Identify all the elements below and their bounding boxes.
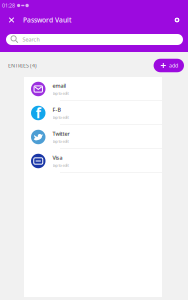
button[interactable]: add	[154, 59, 184, 72]
staticText: Search	[22, 36, 39, 43]
button[interactable]: Twitter	[24, 125, 162, 149]
staticText: f	[36, 104, 41, 122]
staticText: ENTRIES (4)	[8, 62, 37, 69]
staticText: tap to edit	[52, 139, 68, 144]
staticText: Password Vault	[23, 16, 72, 24]
button[interactable]: Close	[0, 11, 23, 29]
staticText: tap to edit	[52, 91, 68, 96]
staticText: Visa	[52, 154, 62, 161]
button[interactable]: f	[24, 101, 162, 125]
staticText: F-B	[52, 106, 60, 113]
staticText: 01:28	[2, 2, 15, 9]
staticText: add	[169, 62, 178, 69]
button[interactable]: Visa	[24, 149, 162, 173]
staticText: tap to edit	[52, 115, 68, 120]
staticText: email	[52, 82, 65, 89]
button[interactable]: Search	[6, 34, 183, 45]
staticText: Twitter	[52, 130, 69, 137]
button[interactable]: Settings	[166, 11, 188, 29]
button[interactable]: email	[24, 77, 162, 101]
staticText: tap to edit	[52, 163, 68, 168]
